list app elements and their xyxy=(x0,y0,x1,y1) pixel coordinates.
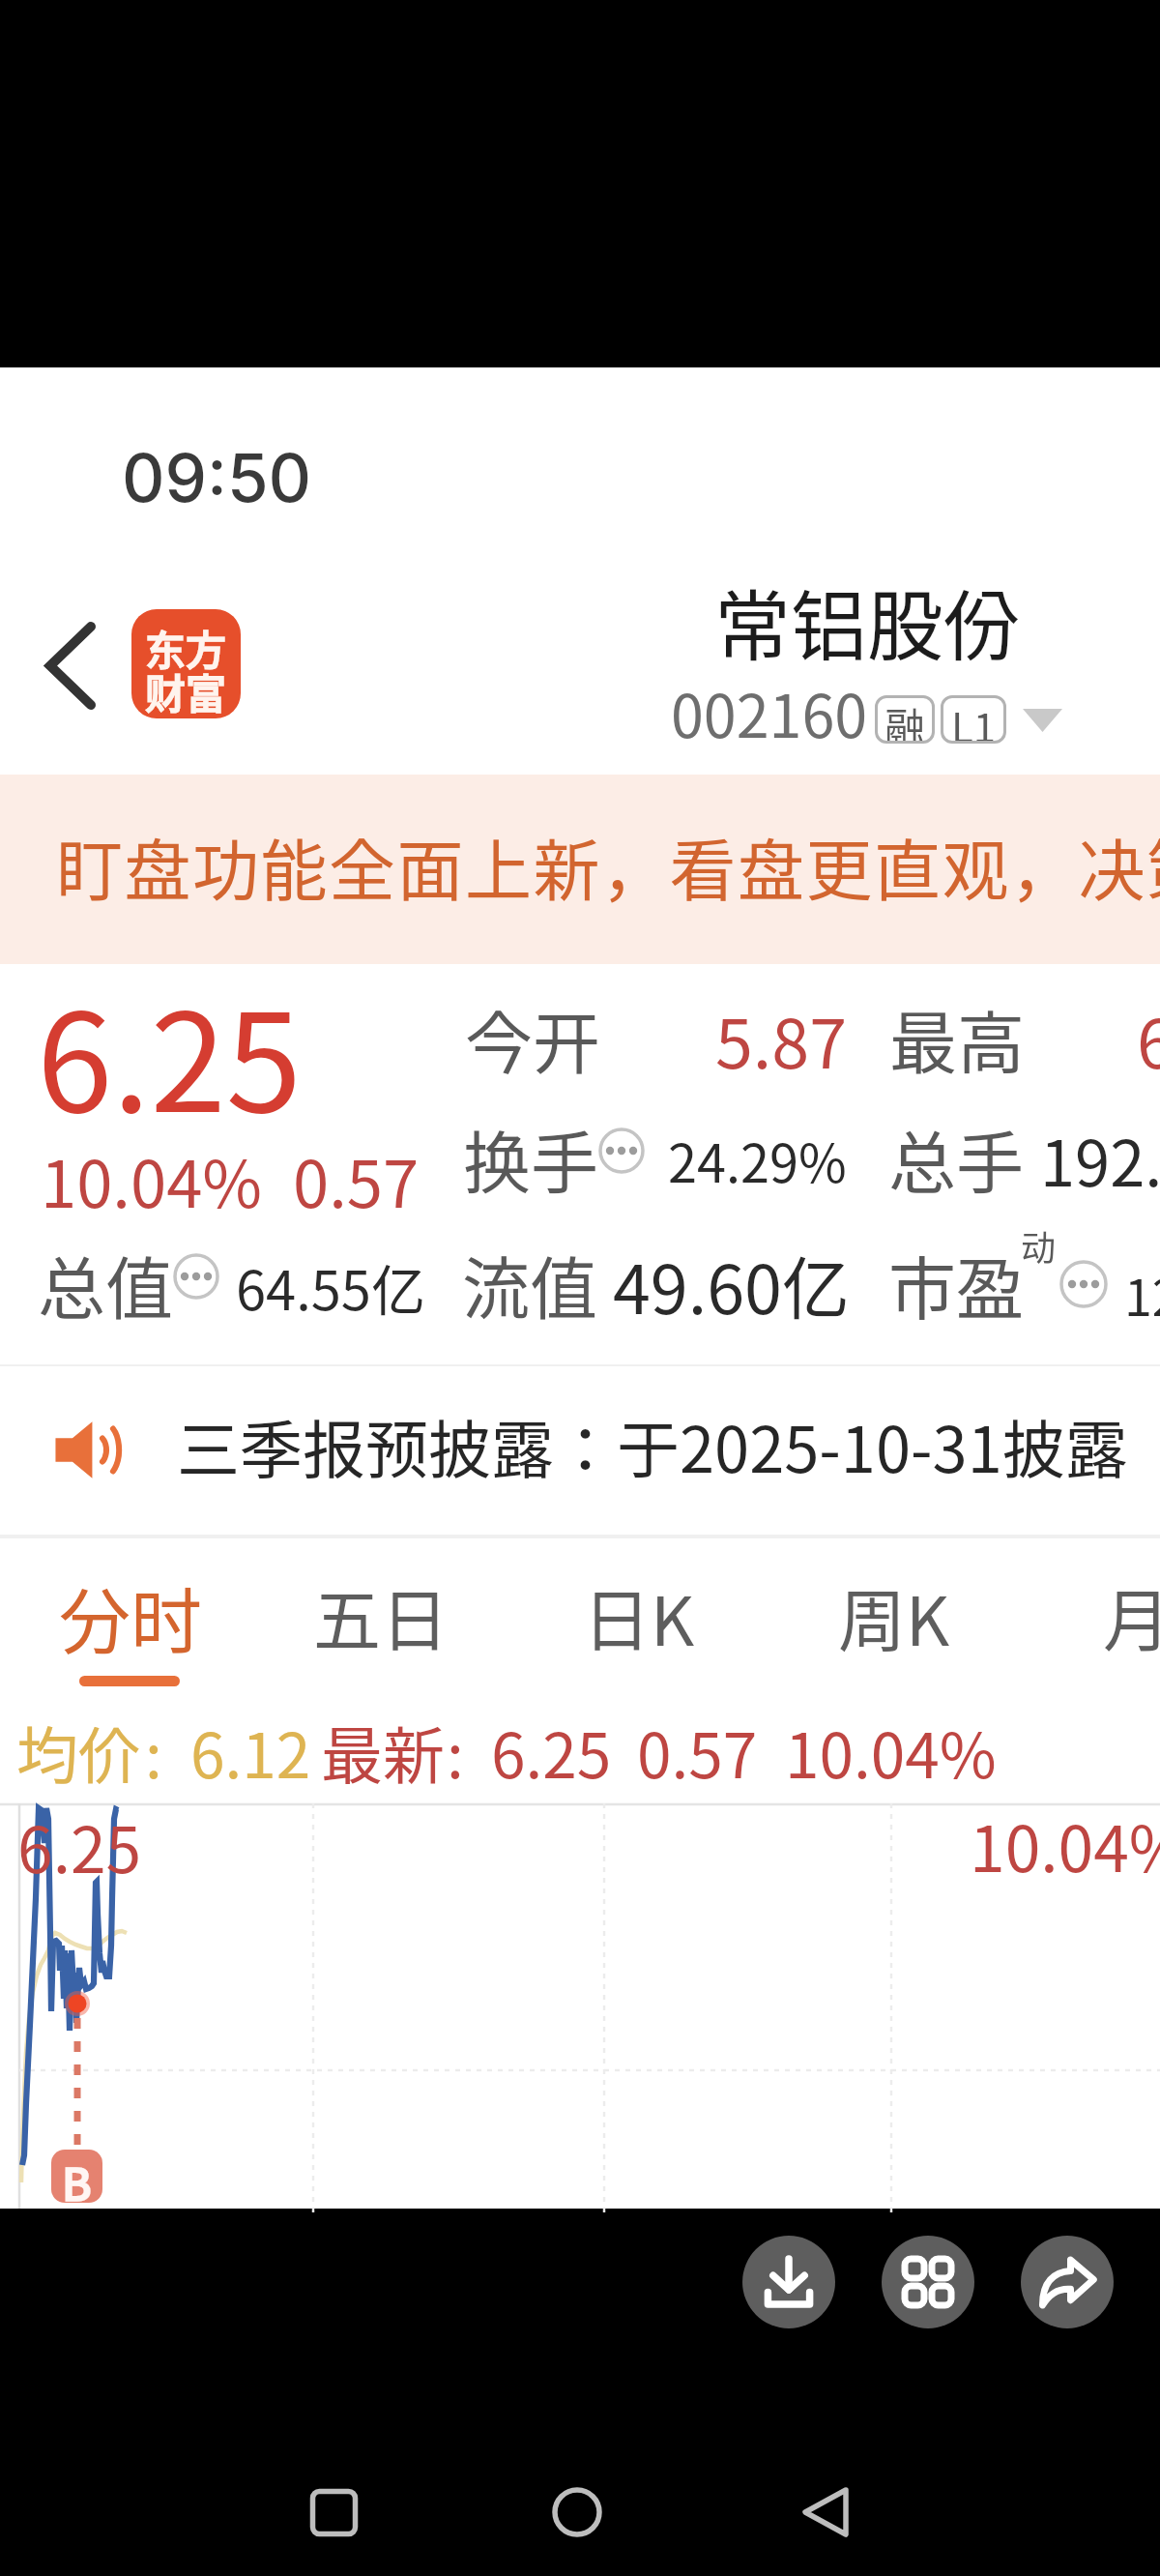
button[interactable]: 常铝股份 xyxy=(635,576,1099,731)
staticText: B xyxy=(62,2150,92,2203)
staticText: 6 xyxy=(1137,990,1160,1088)
staticText: 五日 xyxy=(313,1567,449,1665)
staticText: 002160 xyxy=(671,669,868,754)
button[interactable]: Back xyxy=(6,592,131,717)
staticText: 6.12 xyxy=(190,1707,311,1797)
staticText: 24.29% xyxy=(668,1122,847,1197)
button[interactable]: East Money logo xyxy=(131,609,241,718)
staticText: 月 xyxy=(1103,1567,1160,1665)
staticText: 10.04% xyxy=(970,1798,1160,1890)
staticText: L1 xyxy=(951,695,997,744)
staticText: 12 xyxy=(1124,1258,1160,1331)
button[interactable]: 分时 xyxy=(30,1549,238,1704)
button[interactable]: 五日 xyxy=(284,1549,492,1704)
button[interactable]: 三季报预披露：于2025-10-31披露 xyxy=(0,1366,1160,1537)
button[interactable]: 日K xyxy=(554,1549,762,1704)
staticText: 周K xyxy=(838,1567,950,1665)
staticText: 64.55亿 xyxy=(236,1247,425,1326)
staticText: : xyxy=(447,1707,464,1797)
staticText: 最新 xyxy=(321,1707,445,1797)
staticText: 三季报预披露：于2025-10-31披露 xyxy=(177,1400,1128,1491)
staticText: 常铝股份 xyxy=(714,566,1020,676)
staticText: 0.57 xyxy=(293,1132,420,1226)
button[interactable]: 盯盘功能全面上新，看盘更直观，决策 xyxy=(0,775,1160,964)
staticText: 09:50 xyxy=(122,437,312,517)
button[interactable]: 月 xyxy=(1074,1549,1160,1704)
button[interactable]: 周K xyxy=(809,1549,1017,1704)
staticText: 盯盘功能全面上新，看盘更直观，决策 xyxy=(56,818,1160,915)
staticText: 均价 xyxy=(16,1707,140,1797)
staticText: 东方 xyxy=(145,618,227,677)
staticText: 今开 xyxy=(465,990,600,1088)
staticText: 分时 xyxy=(59,1565,202,1668)
button[interactable]: Share xyxy=(1021,2236,1114,2328)
staticText: 日K xyxy=(583,1567,695,1665)
staticText: 0.57 xyxy=(637,1707,758,1797)
staticText: 6.25 xyxy=(37,953,302,1151)
staticText: 5.87 xyxy=(715,990,848,1088)
staticText: 总手 xyxy=(888,1110,1024,1208)
button[interactable]: All apps xyxy=(882,2236,974,2328)
staticText: : xyxy=(145,1707,162,1797)
staticText: 6.25 xyxy=(17,1799,142,1891)
staticText: 最高 xyxy=(889,990,1025,1088)
button[interactable]: Back xyxy=(791,2477,860,2547)
staticText: 192. xyxy=(1040,1114,1160,1205)
staticText: 流值 xyxy=(462,1236,597,1333)
staticText: 10.04% xyxy=(41,1132,263,1226)
button[interactable]: Recent apps xyxy=(299,2477,368,2547)
staticText: 49.60亿 xyxy=(613,1236,850,1333)
button[interactable]: Home xyxy=(542,2477,612,2547)
staticText: 换手 xyxy=(463,1110,598,1208)
staticText: 10.04% xyxy=(785,1707,997,1797)
staticText: 总值 xyxy=(38,1236,173,1333)
button[interactable]: Download xyxy=(742,2236,835,2328)
staticText: 市盈 xyxy=(888,1236,1024,1333)
staticText: 6.25 xyxy=(491,1707,612,1797)
staticText: 融 xyxy=(884,695,926,744)
staticText: 财富 xyxy=(145,661,227,718)
staticText: 动 xyxy=(1021,1220,1057,1271)
